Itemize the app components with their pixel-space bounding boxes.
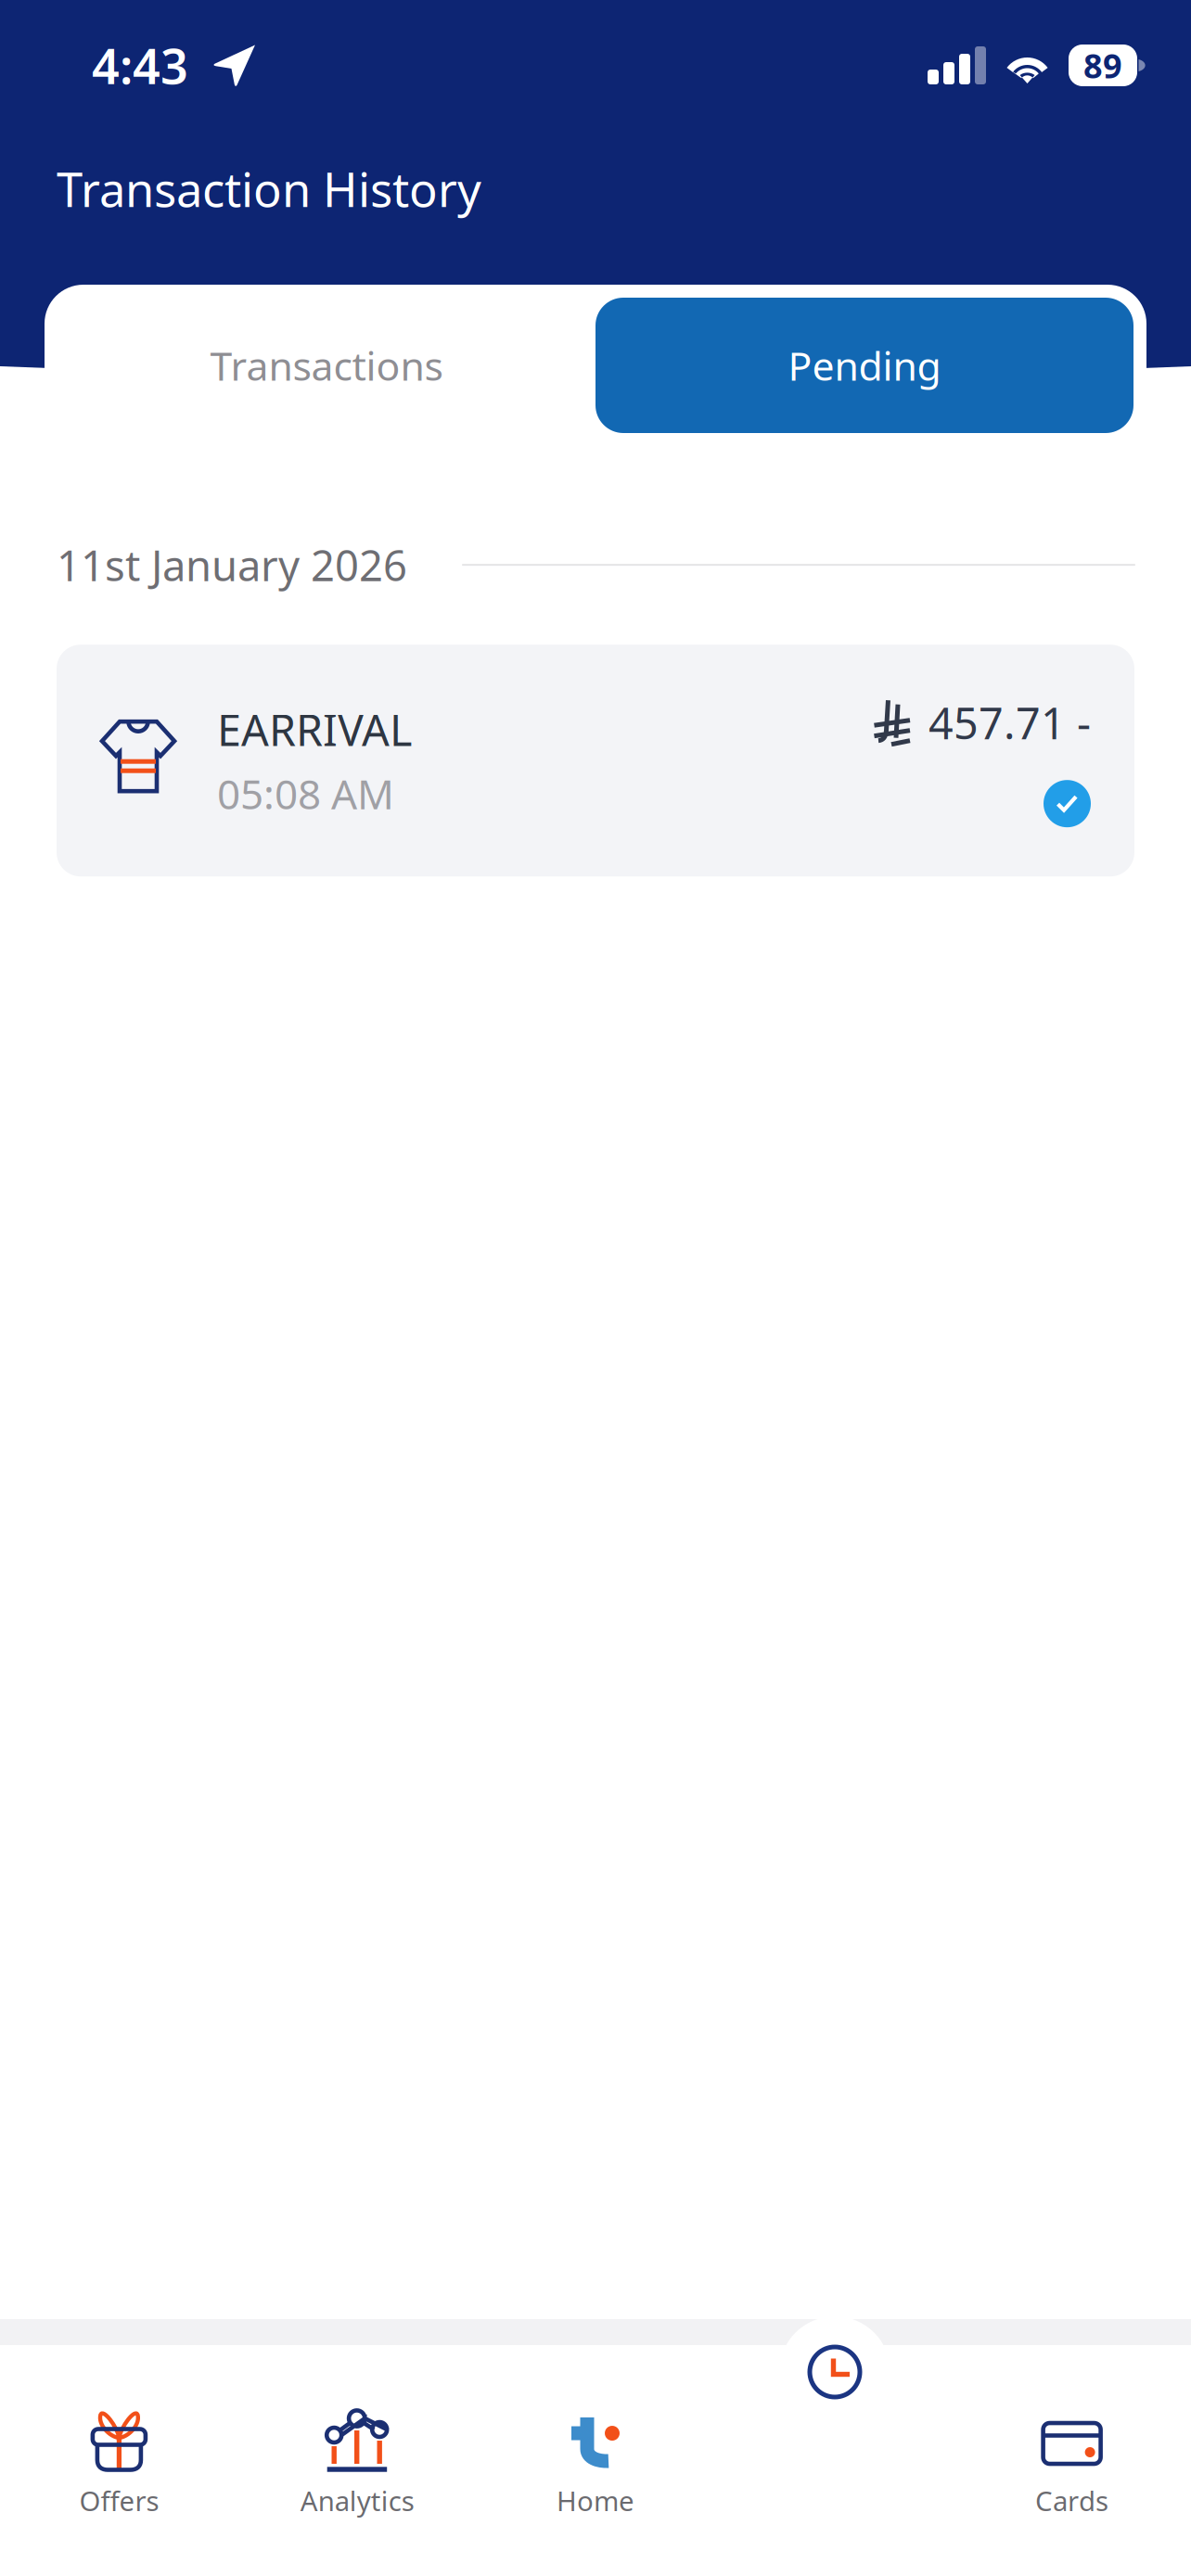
staticText: 4:43 (92, 33, 188, 97)
staticText: 457.71 - (928, 694, 1091, 751)
staticText: EARRIVAL (217, 701, 412, 758)
staticText: 05:08 AM (217, 766, 394, 821)
staticText: Transactions (210, 339, 443, 392)
staticText: Cards (1035, 2482, 1109, 2519)
staticText: 11st January 2026 (57, 537, 407, 593)
staticText: Transaction History (57, 158, 481, 220)
button[interactable]: EARRIVAL (57, 645, 1134, 876)
button[interactable]: Cards (953, 2409, 1191, 2519)
staticText: Offers (79, 2482, 159, 2519)
button[interactable]: Transactions (58, 298, 595, 433)
staticText: Analytics (300, 2482, 414, 2519)
staticText: Home (557, 2482, 634, 2519)
button[interactable]: Analytics (238, 2409, 476, 2519)
staticText: 89 (1083, 43, 1122, 88)
button[interactable]: Home (476, 2409, 715, 2519)
button[interactable]: Pending (595, 298, 1133, 433)
staticText: Pending (788, 339, 941, 392)
button[interactable]: Offers (0, 2409, 238, 2519)
